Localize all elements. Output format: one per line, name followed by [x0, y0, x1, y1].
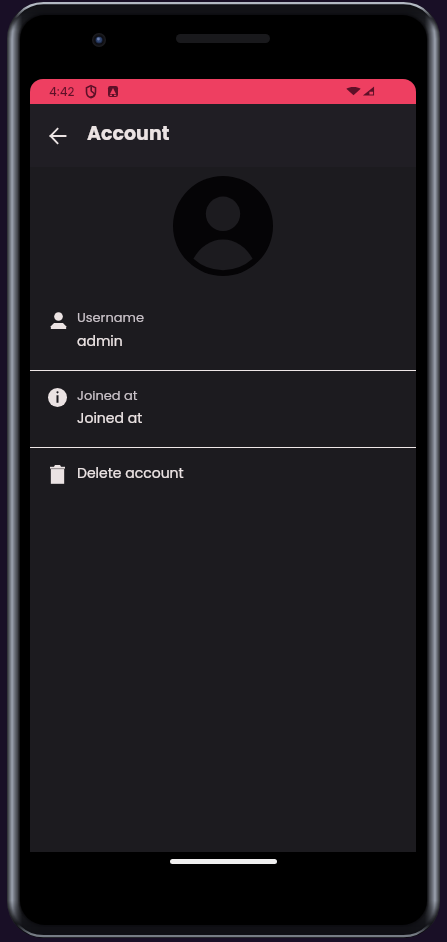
button[interactable]: Back	[36, 114, 80, 158]
staticText: Username	[77, 308, 145, 326]
button[interactable]	[30, 276, 416, 371]
button[interactable]	[30, 372, 416, 448]
staticText: Delete account	[77, 463, 184, 483]
staticText: admin	[77, 331, 123, 351]
staticText: Joined at	[77, 386, 138, 404]
staticText: Account	[87, 120, 170, 147]
staticText: 4:42	[49, 83, 75, 100]
button[interactable]	[30, 449, 416, 503]
staticText: Joined at	[77, 408, 143, 428]
